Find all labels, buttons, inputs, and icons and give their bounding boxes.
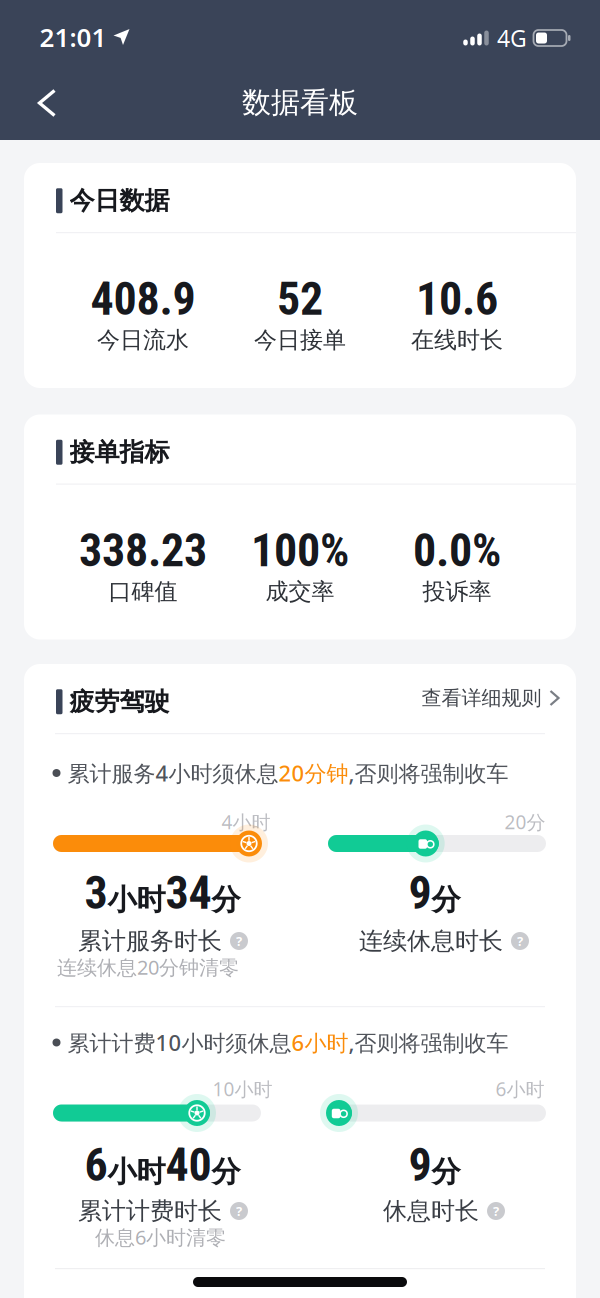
staticText: 6小时 [495,1076,544,1102]
staticText: 今日流水 [97,325,189,354]
staticText: ? [517,932,523,950]
staticText: ? [493,1202,499,1220]
staticText: 累计服务时长 [78,926,222,956]
staticText: 9分 [408,867,460,919]
staticText: 休息6小时清零 [95,1223,226,1251]
staticText: 成交率 [265,577,334,606]
staticText: 3小时34分 [84,867,240,919]
staticText: 今日数据 [69,185,169,216]
staticText: 口碑值 [108,577,177,606]
staticText: 连续休息时长 [359,926,503,956]
staticText: 投诉率 [422,577,491,606]
staticText: 疲劳驾驶 [69,686,169,717]
button[interactable]: 说明 [230,1202,248,1220]
staticText: 累计计费10小时须休息 [67,1027,291,1057]
staticText: 338.23 [79,523,207,577]
staticText: 数据看板 [242,84,358,121]
staticText: 在线时长 [411,325,503,354]
button[interactable]: 查看详细规则 [421,685,558,711]
staticText: 9分 [408,1139,460,1191]
staticText: 10.6 [416,272,498,326]
staticText: 21:01 [39,19,106,55]
staticText: 100% [251,523,349,577]
button[interactable]: Back [27,79,66,127]
staticText: 6小时40分 [84,1139,240,1191]
staticText: 4小时 [221,809,270,835]
staticText: 4G [497,22,527,54]
staticText: 52 [277,272,323,326]
staticText: ? [236,932,242,950]
staticText: ,否则将强制收车 [348,758,508,788]
button[interactable]: 说明 [230,932,248,950]
staticText: 接单指标 [69,436,169,468]
staticText: 今日接单 [254,325,346,354]
staticText: 20分 [504,809,545,835]
button[interactable]: 说明 [487,1202,505,1220]
staticText: 6小时 [291,1027,348,1057]
staticText: 累计计费时长 [78,1196,222,1226]
staticText: ? [236,1202,242,1220]
staticText: 休息时长 [383,1196,479,1226]
staticText: 连续休息20分钟清零 [57,953,239,981]
staticText: 查看详细规则 [421,685,541,711]
button[interactable]: 说明 [511,932,529,950]
staticText: 0.0% [413,523,501,577]
staticText: 10小时 [212,1076,272,1102]
staticText: 累计服务4小时须休息 [67,758,278,788]
staticText: ,否则将强制收车 [348,1027,508,1057]
staticText: 20分钟 [278,758,348,788]
staticText: 408.9 [90,272,195,326]
